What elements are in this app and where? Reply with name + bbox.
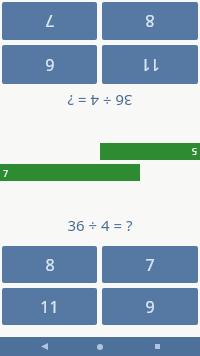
staticText: 7	[45, 10, 55, 32]
staticText: 8	[145, 10, 155, 32]
button[interactable]: 7	[2, 2, 97, 40]
staticText: 9	[145, 296, 155, 318]
button[interactable]: Recents	[144, 337, 170, 356]
staticText: 36 ÷ 4 = ?	[67, 215, 133, 235]
staticText: 11	[40, 296, 59, 318]
button[interactable]: 9	[102, 288, 198, 325]
button[interactable]: 8	[2, 246, 97, 283]
staticText: 8	[45, 254, 55, 276]
button[interactable]: Home	[87, 337, 113, 356]
staticText: 7	[3, 167, 9, 179]
button[interactable]: Back	[31, 337, 57, 356]
button[interactable]: 11	[102, 45, 198, 84]
staticText: 36 ÷ 4 = ?	[67, 91, 133, 111]
button[interactable]: 7	[102, 246, 198, 283]
staticText: 5	[191, 146, 197, 158]
staticText: 6	[45, 54, 55, 76]
staticText: 11	[141, 54, 160, 76]
staticText: 7	[145, 254, 155, 276]
button[interactable]: 6	[2, 45, 97, 84]
button[interactable]: 11	[2, 288, 97, 325]
button[interactable]: 8	[102, 2, 198, 40]
